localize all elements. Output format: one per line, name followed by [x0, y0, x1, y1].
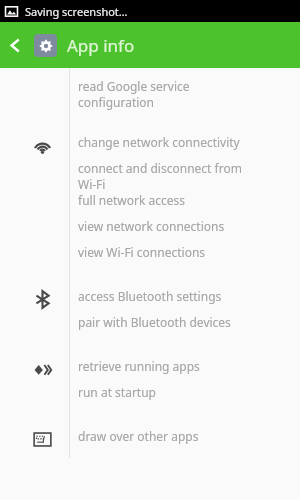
button[interactable]: retrieve running apps [78, 358, 300, 374]
staticText: into accounts on the device [78, 50, 232, 66]
staticText: read Google service configuration [78, 78, 190, 110]
staticText: retrieve running apps [78, 358, 200, 374]
button[interactable]: access Bluetooth settings [78, 288, 300, 304]
button[interactable]: pair with Bluetooth devices [78, 314, 300, 330]
staticText: App info [67, 34, 135, 57]
button[interactable]: connect and disconnect from Wi-Fi full n… [78, 160, 300, 208]
staticText: view network connections [78, 218, 225, 234]
staticText: access Bluetooth settings [78, 288, 222, 304]
staticText: run at startup [78, 384, 156, 400]
button[interactable]: change network connectivity [78, 134, 300, 150]
button[interactable]: draw over other apps [78, 428, 300, 444]
staticText: draw over other apps [78, 428, 199, 444]
staticText: change network connectivity [78, 134, 240, 150]
staticText: Saving screenshot… [25, 4, 128, 19]
button[interactable]: view network connections [78, 218, 300, 234]
staticText: pair with Bluetooth devices [78, 314, 231, 330]
button[interactable]: run at startup [78, 384, 300, 400]
button[interactable]: view Wi-Fi connections [78, 244, 300, 260]
staticText: view Wi-Fi connections [78, 244, 206, 260]
button[interactable]: Back [0, 22, 30, 68]
staticText: connect and disconnect from Wi-Fi full n… [78, 160, 242, 208]
button[interactable]: read Google service configuration [78, 78, 300, 110]
